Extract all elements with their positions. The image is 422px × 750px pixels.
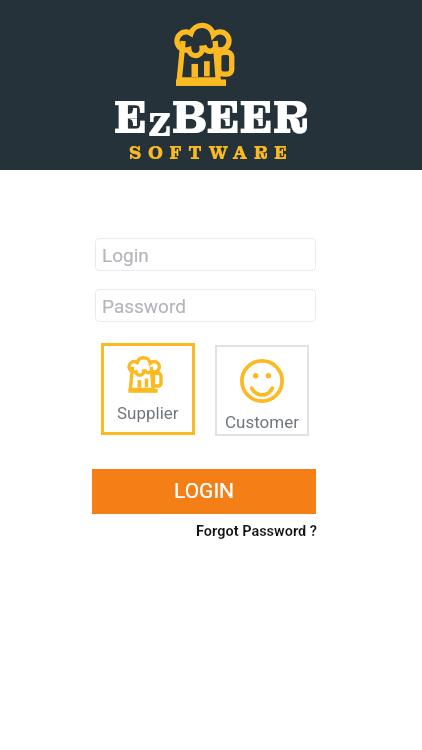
staticText: BEER [172, 87, 309, 147]
staticText: Forgot Password ? [196, 523, 318, 540]
button[interactable]: Login [95, 238, 316, 271]
staticText: Supplier [117, 403, 179, 423]
button[interactable]: Customer [215, 345, 309, 436]
staticText: LOGIN [174, 479, 235, 504]
button[interactable]: Password [95, 289, 316, 322]
staticText: Z [148, 103, 172, 147]
button[interactable]: Forgot Password ? [196, 523, 318, 540]
button[interactable]: Supplier [101, 343, 195, 435]
staticText: Password [102, 295, 186, 317]
staticText: Customer [225, 412, 299, 432]
button[interactable]: LOGIN [92, 469, 316, 514]
staticText: SOFTWARE [129, 141, 294, 164]
staticText: E [114, 87, 148, 147]
staticText: Login [102, 244, 149, 266]
